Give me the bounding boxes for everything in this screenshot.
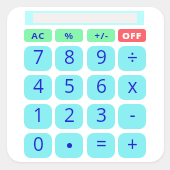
- staticText: =: [96, 133, 107, 156]
- button[interactable]: Power off: [118, 29, 146, 42]
- staticText: 6: [96, 75, 107, 98]
- staticText: -: [129, 104, 136, 127]
- staticText: AC: [31, 29, 45, 42]
- button[interactable]: Four: [24, 75, 52, 100]
- staticText: 1: [33, 104, 44, 127]
- staticText: 9: [96, 46, 107, 69]
- button[interactable]: Eight: [55, 46, 83, 71]
- button[interactable]: One: [24, 104, 52, 129]
- staticText: x: [127, 75, 138, 98]
- button[interactable]: Three: [87, 104, 115, 129]
- button[interactable]: Minus: [118, 104, 146, 129]
- staticText: 5: [64, 75, 75, 98]
- staticText: 8: [64, 46, 75, 69]
- button[interactable]: Display: [25, 11, 144, 25]
- staticText: OFF: [122, 29, 142, 42]
- button[interactable]: Toggle sign: [87, 29, 115, 42]
- staticText: 2: [64, 104, 75, 127]
- staticText: 0: [33, 133, 44, 156]
- staticText: 4: [33, 75, 44, 98]
- button[interactable]: Seven: [24, 46, 52, 71]
- button[interactable]: Two: [55, 104, 83, 129]
- button[interactable]: Equals: [87, 133, 115, 158]
- button[interactable]: Multiply: [118, 75, 146, 100]
- button[interactable]: Five: [55, 75, 83, 100]
- staticText: 3: [96, 104, 107, 127]
- staticText: %: [64, 29, 74, 42]
- staticText: 7: [33, 46, 44, 69]
- button[interactable]: Percent: [55, 29, 83, 42]
- button[interactable]: Decimal point: [55, 133, 83, 158]
- button[interactable]: Plus: [118, 133, 146, 158]
- button[interactable]: Six: [87, 75, 115, 100]
- button[interactable]: All clear: [24, 29, 52, 42]
- button[interactable]: Divide: [118, 46, 146, 71]
- staticText: +: [127, 133, 138, 156]
- button[interactable]: Zero: [24, 133, 52, 158]
- button[interactable]: Nine: [87, 46, 115, 71]
- staticText: +/-: [94, 29, 109, 42]
- staticText: ÷: [127, 46, 138, 69]
